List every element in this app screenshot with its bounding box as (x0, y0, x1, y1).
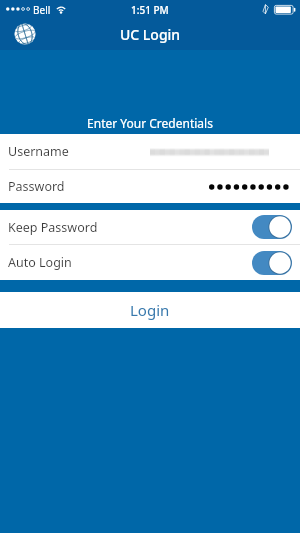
staticText: Auto Login (8, 254, 72, 271)
staticText: Keep Password (8, 219, 98, 236)
button[interactable]: Auto Login (252, 251, 292, 275)
staticText: Enter Your Credentials (87, 115, 213, 131)
button[interactable]: Username (0, 134, 300, 169)
staticText: Bell (33, 3, 51, 17)
button[interactable]: Keep Password (0, 210, 300, 244)
button[interactable]: Keep Password (252, 215, 292, 239)
button[interactable]: Auto Login (0, 245, 300, 280)
button[interactable]: Password (0, 170, 300, 203)
button[interactable]: Login (0, 292, 300, 328)
staticText: 1:51 PM (131, 3, 169, 17)
button[interactable]: Globe (14, 23, 36, 45)
staticText: Username (8, 143, 69, 160)
staticText: UC Login (120, 25, 181, 44)
staticText: Login (130, 300, 170, 320)
staticText: Password (8, 178, 65, 195)
